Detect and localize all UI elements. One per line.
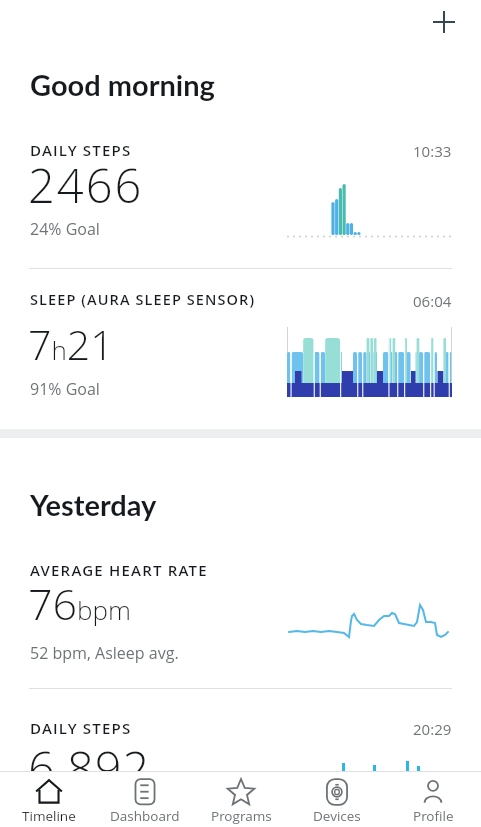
staticText: Timeline [22, 807, 76, 825]
staticText: DAILY STEPS [30, 140, 132, 160]
staticText: 7h21 [28, 316, 114, 372]
button[interactable]: Devices [289, 772, 385, 827]
staticText: 10:33 [413, 141, 452, 161]
staticText: Good morning [30, 67, 215, 102]
button[interactable] [422, 0, 466, 44]
button[interactable]: Programs [193, 772, 289, 827]
staticText: 20:29 [413, 719, 452, 739]
staticText: Devices [313, 807, 361, 825]
button[interactable]: DAILY STEPS [0, 716, 481, 772]
staticText: SLEEP (AURA SLEEP SENSOR) [30, 290, 256, 310]
staticText: 2466 [28, 153, 144, 217]
button[interactable]: Dashboard [97, 772, 193, 827]
staticText: 91% Goal [30, 378, 100, 400]
button[interactable]: Timeline [0, 772, 97, 827]
button[interactable]: DAILY STEPS [0, 138, 481, 268]
staticText: Programs [211, 807, 272, 825]
staticText: 06:04 [413, 291, 452, 311]
staticText: Yesterday [30, 487, 157, 522]
staticText: 52 bpm, Asleep avg. [30, 642, 179, 664]
staticText: 6,892 [28, 736, 151, 792]
button[interactable]: SLEEP (AURA SLEEP SENSOR) [0, 288, 481, 418]
staticText: DAILY STEPS [30, 718, 132, 738]
staticText: AVERAGE HEART RATE [30, 560, 208, 580]
staticText: 76bpm [28, 574, 131, 633]
button[interactable]: Profile [385, 772, 481, 827]
staticText: Profile [413, 807, 454, 825]
staticText: 24% Goal [30, 218, 100, 240]
staticText: Dashboard [110, 807, 180, 825]
button[interactable]: AVERAGE HEART RATE [0, 558, 481, 688]
